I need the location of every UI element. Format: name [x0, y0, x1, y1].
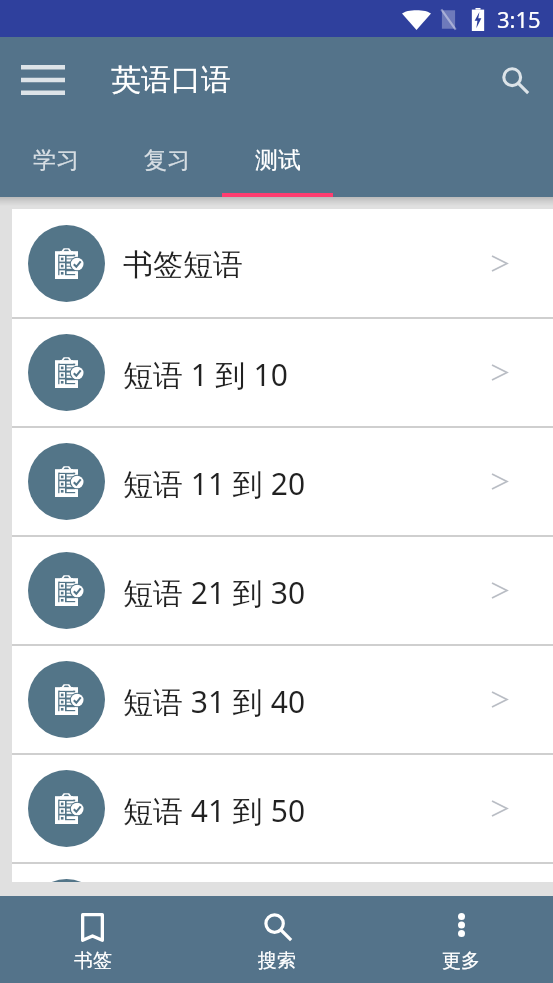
button[interactable]: More options [369, 896, 553, 983]
staticText: 搜索 [258, 949, 296, 973]
button[interactable]: 短语 31 到 40 [12, 645, 553, 753]
button[interactable]: 短语 21 到 30 [12, 536, 553, 644]
button[interactable]: 搜索 [185, 896, 369, 983]
staticText: 短语 1 到 10 [123, 354, 288, 395]
button[interactable]: 短语 11 到 20 [12, 427, 553, 535]
staticText: 短语 41 到 50 [123, 790, 306, 831]
staticText: 短语 21 到 30 [123, 572, 306, 613]
button[interactable]: 复习 [111, 118, 222, 197]
other: More options [458, 913, 465, 937]
staticText: 书签短语 [123, 246, 243, 284]
button[interactable]: 短语 41 到 50 [12, 754, 553, 862]
staticText: 英语口语 [111, 61, 231, 99]
button[interactable]: 短语 51 到 60 [12, 863, 553, 882]
button[interactable]: 测试 [222, 118, 333, 197]
button[interactable]: Menu [14, 49, 72, 107]
staticText: 复习 [144, 146, 190, 175]
staticText: 学习 [33, 146, 79, 175]
staticText: 测试 [255, 146, 301, 175]
button[interactable]: 书签短语 [12, 209, 553, 317]
button[interactable]: 短语 1 到 10 [12, 318, 553, 426]
staticText: 书签 [74, 949, 112, 973]
staticText: 更多 [442, 949, 480, 973]
staticText: 短语 31 到 40 [123, 681, 306, 722]
button[interactable]: 书签 [0, 896, 185, 983]
button[interactable]: 学习 [0, 118, 111, 197]
staticText: 3:15 [497, 4, 541, 34]
staticText: 短语 11 到 20 [123, 463, 306, 504]
button[interactable]: Search [487, 50, 543, 106]
